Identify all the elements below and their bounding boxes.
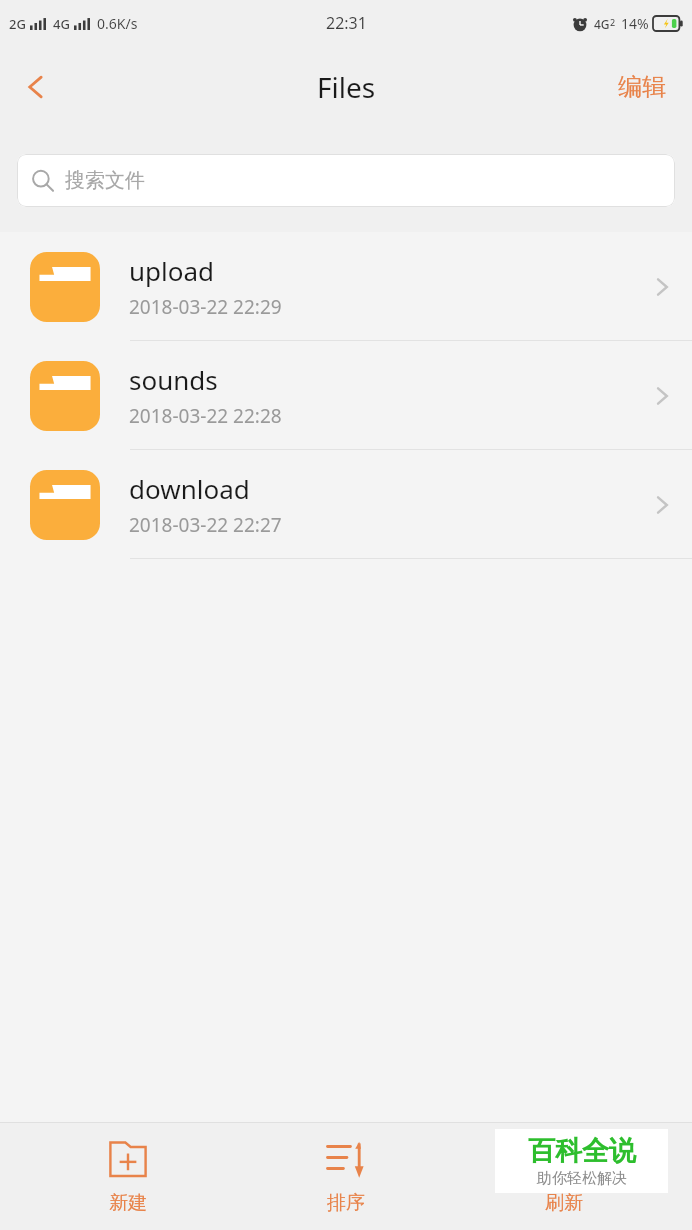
staticText: 2018-03-22 22:27	[129, 512, 282, 538]
staticText: upload	[129, 253, 215, 288]
staticText: 2G	[9, 15, 26, 33]
staticText: 22:31	[326, 12, 367, 34]
staticText: 排序	[327, 1191, 365, 1215]
button[interactable]: Back	[0, 51, 72, 123]
staticText: 0.6K/s	[97, 14, 138, 33]
staticText: 2	[610, 16, 616, 28]
staticText: 刷新	[545, 1191, 583, 1215]
button[interactable]: 新建	[38, 1123, 218, 1230]
button[interactable]: 搜索文件	[17, 154, 675, 207]
staticText: 编辑	[618, 72, 666, 102]
staticText: 4G	[53, 15, 70, 33]
button[interactable]: download	[0, 450, 692, 559]
button[interactable]: sounds	[0, 341, 692, 450]
staticText: 百科全说	[528, 1134, 636, 1168]
button[interactable]: 排序	[256, 1123, 436, 1230]
staticText: download	[129, 471, 250, 506]
staticText: 助你轻松解决	[537, 1169, 627, 1188]
staticText: Files	[317, 68, 376, 106]
staticText: 2018-03-22 22:28	[129, 403, 282, 429]
button[interactable]: 刷新	[474, 1123, 654, 1230]
staticText: sounds	[129, 362, 218, 397]
staticText: 2018-03-22 22:29	[129, 294, 282, 320]
button[interactable]: upload	[0, 232, 692, 341]
staticText: 新建	[109, 1191, 147, 1215]
staticText: 14%	[621, 14, 649, 33]
staticText: 4G	[594, 16, 610, 32]
button[interactable]: 编辑	[610, 64, 674, 110]
staticText: 搜索文件	[65, 168, 145, 193]
